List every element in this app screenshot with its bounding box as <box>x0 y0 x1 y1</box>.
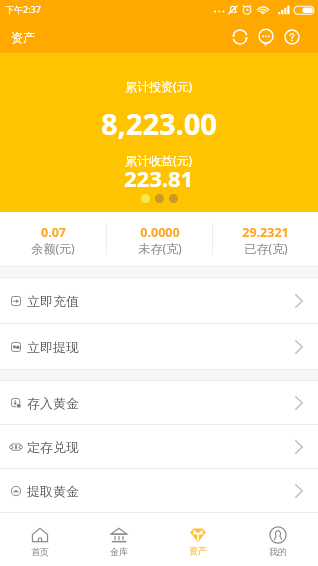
button[interactable]: 首页 <box>0 513 79 566</box>
staticText: 定存兑现 <box>27 439 79 455</box>
staticText: 资产 <box>11 30 35 45</box>
button[interactable]: 29.2321 <box>213 212 318 266</box>
button[interactable]: 提取黄金 <box>0 469 318 512</box>
button[interactable]: Customer service <box>256 27 276 47</box>
staticText: 未存(克) <box>138 240 182 256</box>
staticText: 提取黄金 <box>27 483 79 499</box>
button[interactable]: 立即充值 <box>0 278 318 323</box>
staticText: 累计收益(元) <box>125 152 193 168</box>
staticText: 首页 <box>31 546 49 557</box>
button[interactable]: Help <box>282 27 302 47</box>
button[interactable]: 立即提现 <box>0 324 318 369</box>
staticText: 下午2:37 <box>5 3 41 15</box>
staticText: 存入黄金 <box>27 395 79 411</box>
staticText: 累计投资(元) <box>125 78 193 94</box>
button[interactable]: Refresh <box>230 27 250 47</box>
staticText: 金库 <box>110 546 128 557</box>
staticText: 8,223.00 <box>101 104 217 143</box>
button[interactable]: 金库 <box>79 513 158 566</box>
button[interactable]: 我的 <box>238 513 318 566</box>
staticText: 立即充值 <box>27 293 79 309</box>
staticText: 29.2321 <box>242 224 289 241</box>
button[interactable]: 0.0000 <box>107 212 212 266</box>
button[interactable]: 存入黄金 <box>0 381 318 424</box>
button[interactable]: 资产 <box>158 513 238 566</box>
staticText: 资产 <box>189 545 207 556</box>
staticText: 已存(克) <box>244 240 288 256</box>
button[interactable]: 0.07 <box>0 212 106 266</box>
staticText: 我的 <box>269 546 287 557</box>
staticText: 0.07 <box>41 224 66 241</box>
staticText: 223.81 <box>124 163 194 193</box>
button[interactable]: 定存兑现 <box>0 425 318 468</box>
staticText: 0.0000 <box>140 224 180 241</box>
staticText: 立即提现 <box>27 339 79 355</box>
staticText: 余额(元) <box>31 240 75 256</box>
